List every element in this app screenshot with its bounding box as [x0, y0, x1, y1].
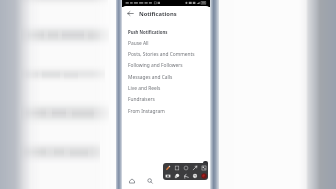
button[interactable]: Pen — [164, 164, 171, 171]
button[interactable]: Arrow — [191, 164, 198, 171]
button[interactable]: Circle — [182, 164, 189, 171]
button[interactable]: Crop — [200, 164, 207, 171]
staticText: Messages and Calls — [128, 74, 173, 81]
button[interactable]: Home — [122, 174, 141, 188]
button[interactable]: From Instagram — [122, 106, 210, 117]
button[interactable]: Push Notifications — [122, 26, 210, 37]
staticText: Push Notifications — [128, 29, 168, 35]
staticText: Fundraisers — [128, 96, 155, 103]
button[interactable]: Back — [126, 9, 135, 18]
button[interactable]: Search — [141, 174, 159, 188]
button[interactable]: Rectangle — [173, 164, 180, 171]
button[interactable]: Palette — [191, 172, 198, 179]
button[interactable]: Colour — [200, 172, 207, 179]
button[interactable]: Undo — [182, 172, 189, 179]
button[interactable]: Fundraisers — [122, 94, 210, 105]
staticText: Live and Reels — [128, 85, 161, 92]
staticText: Pause All — [128, 40, 149, 47]
staticText: Posts, Stories and Comments — [128, 51, 195, 58]
button[interactable]: Screenshot — [164, 172, 171, 179]
staticText: From Instagram — [128, 108, 165, 115]
button[interactable]: Messages and Calls — [122, 72, 210, 83]
button[interactable]: Following and Followers — [122, 60, 210, 71]
button[interactable]: Eraser — [173, 172, 180, 179]
button[interactable]: Pause All — [122, 38, 210, 49]
button[interactable]: Collapse toolbar — [203, 161, 208, 166]
button[interactable]: Posts, Stories and Comments — [122, 49, 210, 60]
staticText: Notifications — [139, 10, 177, 18]
button[interactable]: Live and Reels — [122, 83, 210, 94]
staticText: Following and Followers — [128, 62, 183, 69]
